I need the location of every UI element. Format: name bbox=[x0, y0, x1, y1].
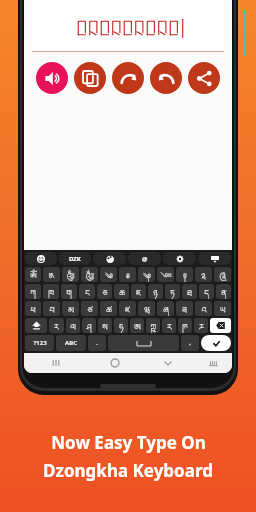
staticText: ༈ bbox=[183, 267, 187, 282]
staticText: @ bbox=[142, 255, 148, 263]
button[interactable]: ༀ bbox=[25, 267, 41, 282]
button[interactable]: ཆ bbox=[114, 284, 129, 299]
staticText: ཝ bbox=[144, 301, 150, 316]
button[interactable]: ན bbox=[216, 284, 231, 299]
staticText: ༄ bbox=[105, 267, 113, 282]
staticText: ཐ bbox=[187, 284, 192, 299]
button[interactable]: ༈ bbox=[176, 267, 193, 282]
button[interactable]: ཏ bbox=[165, 284, 180, 299]
staticText: ན bbox=[221, 284, 227, 299]
staticText: ?123 bbox=[33, 339, 47, 347]
staticText: ད bbox=[204, 284, 209, 299]
staticText: ABC bbox=[65, 339, 77, 347]
button[interactable]: Hide keyboard bbox=[198, 252, 231, 265]
staticText: མ bbox=[68, 301, 74, 316]
button[interactable]: ཁ bbox=[43, 284, 59, 299]
staticText: ༊ bbox=[219, 267, 227, 282]
button[interactable]: ཚ bbox=[100, 301, 117, 316]
button[interactable]: ཛ bbox=[119, 301, 136, 316]
button[interactable]: ༊ bbox=[214, 267, 231, 282]
button[interactable]: ལ bbox=[66, 318, 80, 333]
button[interactable]: ཟ bbox=[176, 301, 193, 316]
button[interactable]: ཫ bbox=[178, 318, 192, 333]
button[interactable]: ཇ bbox=[131, 284, 146, 299]
staticText: ལ bbox=[70, 318, 76, 333]
button[interactable]: ༃ bbox=[81, 267, 98, 282]
button[interactable]: Theme bbox=[93, 252, 126, 265]
staticText: ༅ bbox=[126, 267, 130, 282]
button[interactable]: ཀ bbox=[25, 284, 41, 299]
staticText: ༀ bbox=[30, 267, 37, 282]
staticText: ཀ bbox=[30, 284, 36, 299]
button[interactable]: ༇ bbox=[157, 267, 174, 282]
staticText: ས bbox=[102, 318, 108, 333]
button[interactable]: Emoji bbox=[25, 252, 57, 265]
button[interactable]: ABC bbox=[56, 335, 86, 351]
button[interactable]: ཧ bbox=[114, 318, 128, 333]
button[interactable]: ཐ bbox=[182, 284, 197, 299]
button[interactable]: ༉ bbox=[195, 267, 212, 282]
button[interactable]: Shift bbox=[25, 318, 47, 333]
button[interactable]: ༆ bbox=[138, 267, 155, 282]
staticText: ༃ bbox=[85, 267, 94, 282]
staticText: ཡ bbox=[220, 301, 226, 316]
button[interactable]: Speak bbox=[36, 62, 68, 94]
button[interactable]: འ bbox=[195, 301, 212, 316]
staticText: ༆ bbox=[143, 267, 151, 282]
button[interactable]: ཬ bbox=[194, 318, 208, 333]
button[interactable]: མ bbox=[62, 301, 79, 316]
button[interactable]: ཨ bbox=[130, 318, 144, 333]
button[interactable]: ང bbox=[79, 284, 95, 299]
button[interactable]: Enter bbox=[201, 335, 231, 351]
staticText: ག bbox=[66, 284, 72, 299]
staticText: Dzongkha Keyboard bbox=[43, 459, 213, 482]
button[interactable]: Backspace bbox=[210, 318, 231, 333]
button[interactable]: @ bbox=[128, 252, 161, 265]
button[interactable]: Copy bbox=[74, 62, 106, 94]
button[interactable]: ཀྵ bbox=[146, 318, 160, 333]
staticText: ཛ bbox=[125, 301, 130, 316]
button[interactable]: བ bbox=[43, 301, 60, 316]
staticText: ཅ bbox=[102, 284, 108, 299]
button[interactable]: . bbox=[88, 335, 106, 351]
staticText: འ bbox=[201, 301, 207, 316]
button[interactable]: Undo bbox=[150, 62, 182, 94]
button[interactable]: Space bbox=[108, 335, 179, 351]
button[interactable]: ༅ bbox=[119, 267, 136, 282]
button[interactable]: ༄ bbox=[100, 267, 117, 282]
button[interactable]: Redo bbox=[112, 62, 144, 94]
button[interactable]: ཪ bbox=[162, 318, 176, 333]
staticText: ཞ bbox=[163, 301, 169, 316]
staticText: Now Easy Type On bbox=[51, 431, 206, 454]
staticText: ༁ bbox=[48, 267, 55, 282]
staticText: , bbox=[189, 339, 191, 347]
button[interactable]: ཤ bbox=[82, 318, 96, 333]
button[interactable] bbox=[32, 0, 224, 52]
button[interactable]: DZK bbox=[59, 252, 91, 265]
button[interactable]: ༁ bbox=[43, 267, 60, 282]
staticText: ཇ bbox=[136, 284, 141, 299]
staticText: ཤ bbox=[86, 318, 92, 333]
button[interactable]: ད bbox=[199, 284, 214, 299]
button[interactable]: ༂ bbox=[62, 267, 79, 282]
staticText: ཚ bbox=[106, 301, 112, 316]
button[interactable]: , bbox=[181, 335, 199, 351]
staticText: ཕ bbox=[30, 301, 36, 316]
button[interactable]: ?123 bbox=[25, 335, 54, 351]
button[interactable]: ཡ bbox=[214, 301, 231, 316]
staticText: ཟ bbox=[182, 301, 187, 316]
button[interactable]: ས bbox=[98, 318, 112, 333]
button[interactable]: ཝ bbox=[138, 301, 155, 316]
button[interactable]: ཞ bbox=[157, 301, 174, 316]
button[interactable]: ག bbox=[61, 284, 77, 299]
staticText: . bbox=[96, 339, 98, 347]
button[interactable]: ཕ bbox=[25, 301, 41, 316]
button[interactable]: ར bbox=[49, 318, 64, 333]
button[interactable]: ཅ bbox=[97, 284, 112, 299]
staticText: ཬ bbox=[199, 318, 204, 333]
button[interactable]: Share bbox=[188, 62, 220, 94]
button[interactable]: ཙ bbox=[81, 301, 98, 316]
button[interactable]: Settings bbox=[163, 252, 196, 265]
staticText: ང bbox=[85, 284, 90, 299]
button[interactable]: ཉ bbox=[148, 284, 163, 299]
